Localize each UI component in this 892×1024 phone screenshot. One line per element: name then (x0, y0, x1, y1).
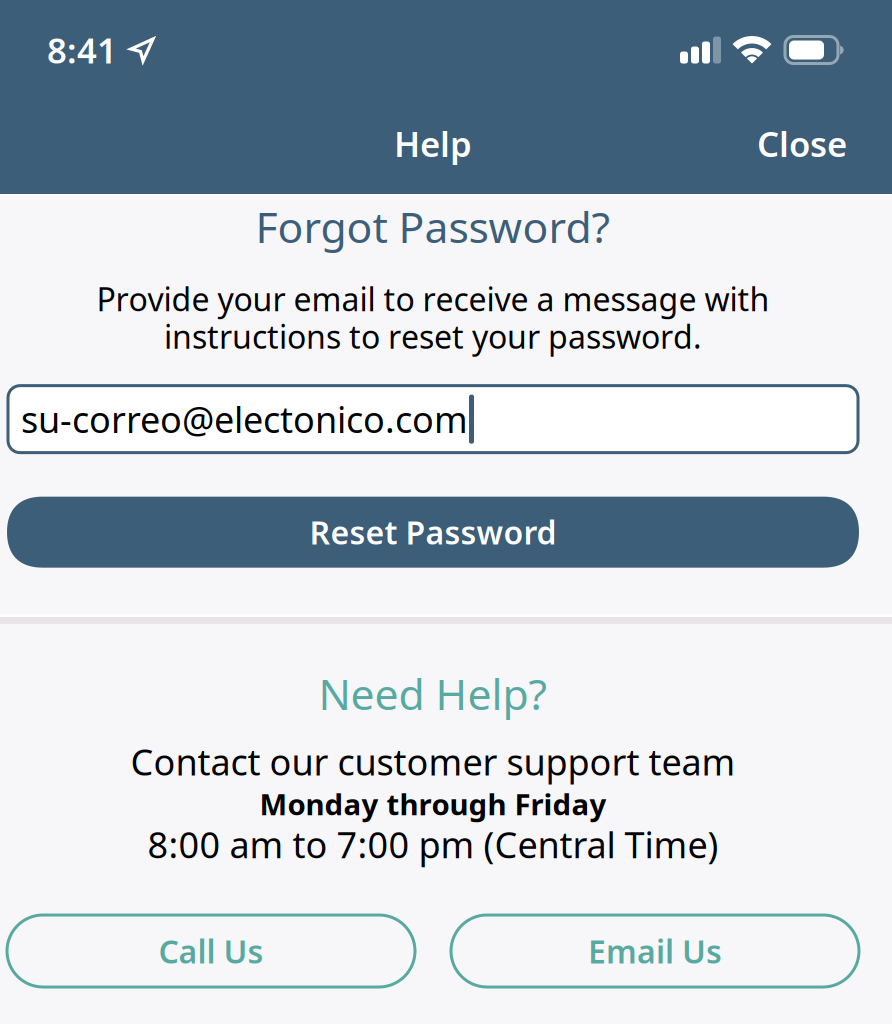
button[interactable]: Email Us (451, 915, 859, 987)
button[interactable]: Call Us (7, 915, 415, 987)
staticText: 8:00 am to 7:00 pm (Central Time) (147, 820, 718, 868)
staticText: Need Help? (318, 665, 547, 722)
button[interactable]: Close (741, 108, 863, 178)
staticText: Help (394, 120, 472, 166)
staticText: Close (757, 120, 847, 166)
staticText: Forgot Password? (255, 198, 610, 255)
button[interactable]: Reset Password (7, 497, 859, 568)
staticText: Email Us (588, 930, 722, 972)
staticText: Reset Password (309, 511, 556, 553)
staticText: Contact our customer support team (130, 738, 735, 785)
staticText: su-correo@electonico.com (21, 395, 468, 443)
staticText: instructions to reset your password. (164, 315, 702, 358)
staticText: Call Us (158, 930, 263, 972)
staticText: Monday through Friday (259, 784, 606, 823)
button[interactable]: Email address (8, 386, 858, 453)
staticText: Provide your email to receive a message … (96, 278, 769, 320)
staticText: 8:41 (47, 27, 117, 73)
